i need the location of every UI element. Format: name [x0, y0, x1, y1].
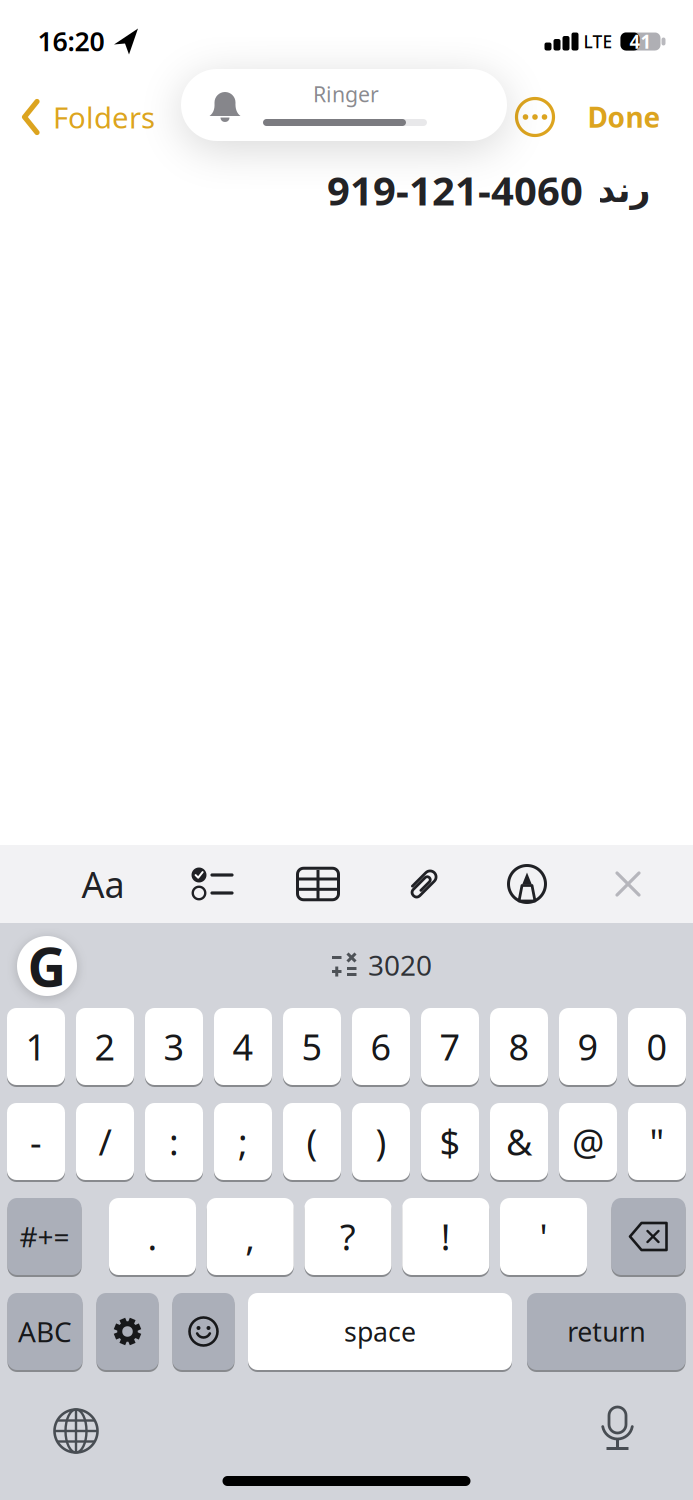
staticText: ;	[238, 1118, 248, 1165]
button[interactable]: 0	[628, 1007, 686, 1086]
staticText: LTE	[583, 30, 612, 53]
button[interactable]: 9	[559, 1007, 617, 1086]
button[interactable]: 3	[145, 1007, 203, 1086]
button[interactable]: 7	[421, 1007, 479, 1086]
staticText: 6	[370, 1023, 391, 1070]
staticText: 5	[301, 1023, 322, 1070]
button[interactable]: @	[559, 1102, 617, 1181]
button[interactable]: ?	[304, 1197, 391, 1276]
button[interactable]: (	[283, 1102, 341, 1181]
button[interactable]: 1	[7, 1007, 65, 1086]
staticText: 3	[163, 1023, 184, 1070]
staticText: :	[169, 1118, 179, 1165]
staticText: ,	[245, 1213, 255, 1260]
button[interactable]: Back to Folders	[21, 95, 155, 139]
staticText: 9	[577, 1023, 598, 1070]
staticText: return	[567, 1314, 645, 1349]
staticText: 919-121-4060	[327, 163, 583, 216]
button[interactable]: ABC	[7, 1292, 82, 1371]
staticText: @	[572, 1118, 604, 1165]
staticText: .	[147, 1213, 157, 1260]
button[interactable]: 8	[490, 1007, 548, 1086]
staticText: #+=	[19, 1218, 69, 1255]
staticText: Aa	[81, 860, 124, 908]
button[interactable]: Dismiss	[598, 854, 658, 914]
button[interactable]: More	[513, 95, 557, 139]
staticText: /	[98, 1118, 111, 1165]
staticText: '	[539, 1213, 547, 1260]
button[interactable]: Next keyboard	[48, 1403, 104, 1459]
button[interactable]: )	[352, 1102, 410, 1181]
staticText: Folders	[53, 97, 155, 136]
staticText: "	[649, 1118, 664, 1165]
staticText: Ringer	[313, 80, 379, 108]
staticText: 1	[25, 1023, 46, 1070]
staticText: space	[344, 1314, 416, 1349]
button[interactable]: Delete	[611, 1197, 685, 1276]
staticText: -	[30, 1118, 42, 1165]
button[interactable]: space	[248, 1292, 512, 1371]
button[interactable]: Text formatting	[73, 854, 133, 914]
button[interactable]: Settings	[96, 1292, 158, 1371]
staticText: 2	[94, 1023, 115, 1070]
button[interactable]: !	[402, 1197, 489, 1276]
button[interactable]: "	[628, 1102, 686, 1181]
button[interactable]: return	[527, 1292, 685, 1371]
staticText: 16:20	[37, 23, 104, 59]
button[interactable]: -	[7, 1102, 65, 1181]
button[interactable]: Done	[559, 95, 689, 139]
staticText: 4	[232, 1023, 253, 1070]
button[interactable]: Emoji	[172, 1292, 234, 1371]
staticText: )	[375, 1118, 386, 1165]
button[interactable]: .	[109, 1197, 196, 1276]
button[interactable]: 5	[283, 1007, 341, 1086]
button[interactable]: ;	[214, 1102, 272, 1181]
button[interactable]: 6	[352, 1007, 410, 1086]
staticText: 3020	[368, 946, 432, 984]
button[interactable]: Table	[288, 854, 348, 914]
staticText: 0	[646, 1023, 667, 1070]
button[interactable]: ,	[207, 1197, 294, 1276]
button[interactable]: Checklist	[182, 854, 242, 914]
staticText: $	[439, 1118, 460, 1165]
button[interactable]: Dictation	[589, 1404, 645, 1452]
staticText: 8	[508, 1023, 529, 1070]
button[interactable]: #+=	[7, 1197, 81, 1276]
button[interactable]: Markup	[497, 854, 557, 914]
staticText: G	[27, 931, 66, 1001]
button[interactable]: '	[500, 1197, 587, 1276]
button[interactable]: :	[145, 1102, 203, 1181]
staticText: 7	[439, 1023, 460, 1070]
button[interactable]: 4	[214, 1007, 272, 1086]
staticText: !	[441, 1213, 451, 1260]
button[interactable]: 2	[76, 1007, 134, 1086]
button[interactable]: Attach	[393, 854, 453, 914]
button[interactable]: &	[490, 1102, 548, 1181]
staticText: 41	[629, 29, 651, 54]
staticText: &	[506, 1118, 532, 1165]
staticText: ABC	[18, 1313, 72, 1350]
staticText: ?	[340, 1213, 356, 1260]
button[interactable]: $	[421, 1102, 479, 1181]
button[interactable]: Google search	[16, 935, 78, 997]
staticText: (	[306, 1118, 317, 1165]
button[interactable]: Calculator result 3020	[332, 937, 432, 993]
staticText: رند	[597, 170, 650, 210]
button[interactable]: /	[76, 1102, 134, 1181]
staticText: Done	[587, 98, 660, 136]
